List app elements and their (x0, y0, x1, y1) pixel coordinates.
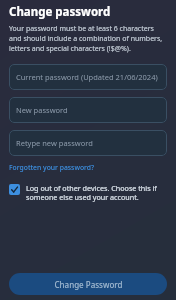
staticText: Your password must be at least 6 charact… (9, 24, 167, 54)
staticText: Forgotten your password? (9, 163, 95, 172)
staticText: Current password (Updated 21/06/2024) (16, 72, 158, 82)
staticText: Change Password (54, 279, 123, 290)
button[interactable]: Log out of other devices checkbox (9, 182, 167, 204)
button[interactable]: New password (9, 97, 167, 123)
staticText: New password (16, 105, 68, 115)
staticText: Log out of other devices. Choose this if… (26, 183, 167, 203)
button[interactable]: Retype new password (9, 130, 167, 156)
other: Log out of other devices checkbox (9, 184, 20, 195)
staticText: Retype new password (16, 138, 93, 148)
button[interactable]: Current password (Updated 21/06/2024) (9, 64, 167, 90)
button[interactable]: Change Password (9, 273, 167, 295)
staticText: Change password (9, 4, 111, 20)
button[interactable]: Forgotten your password? (9, 162, 95, 173)
